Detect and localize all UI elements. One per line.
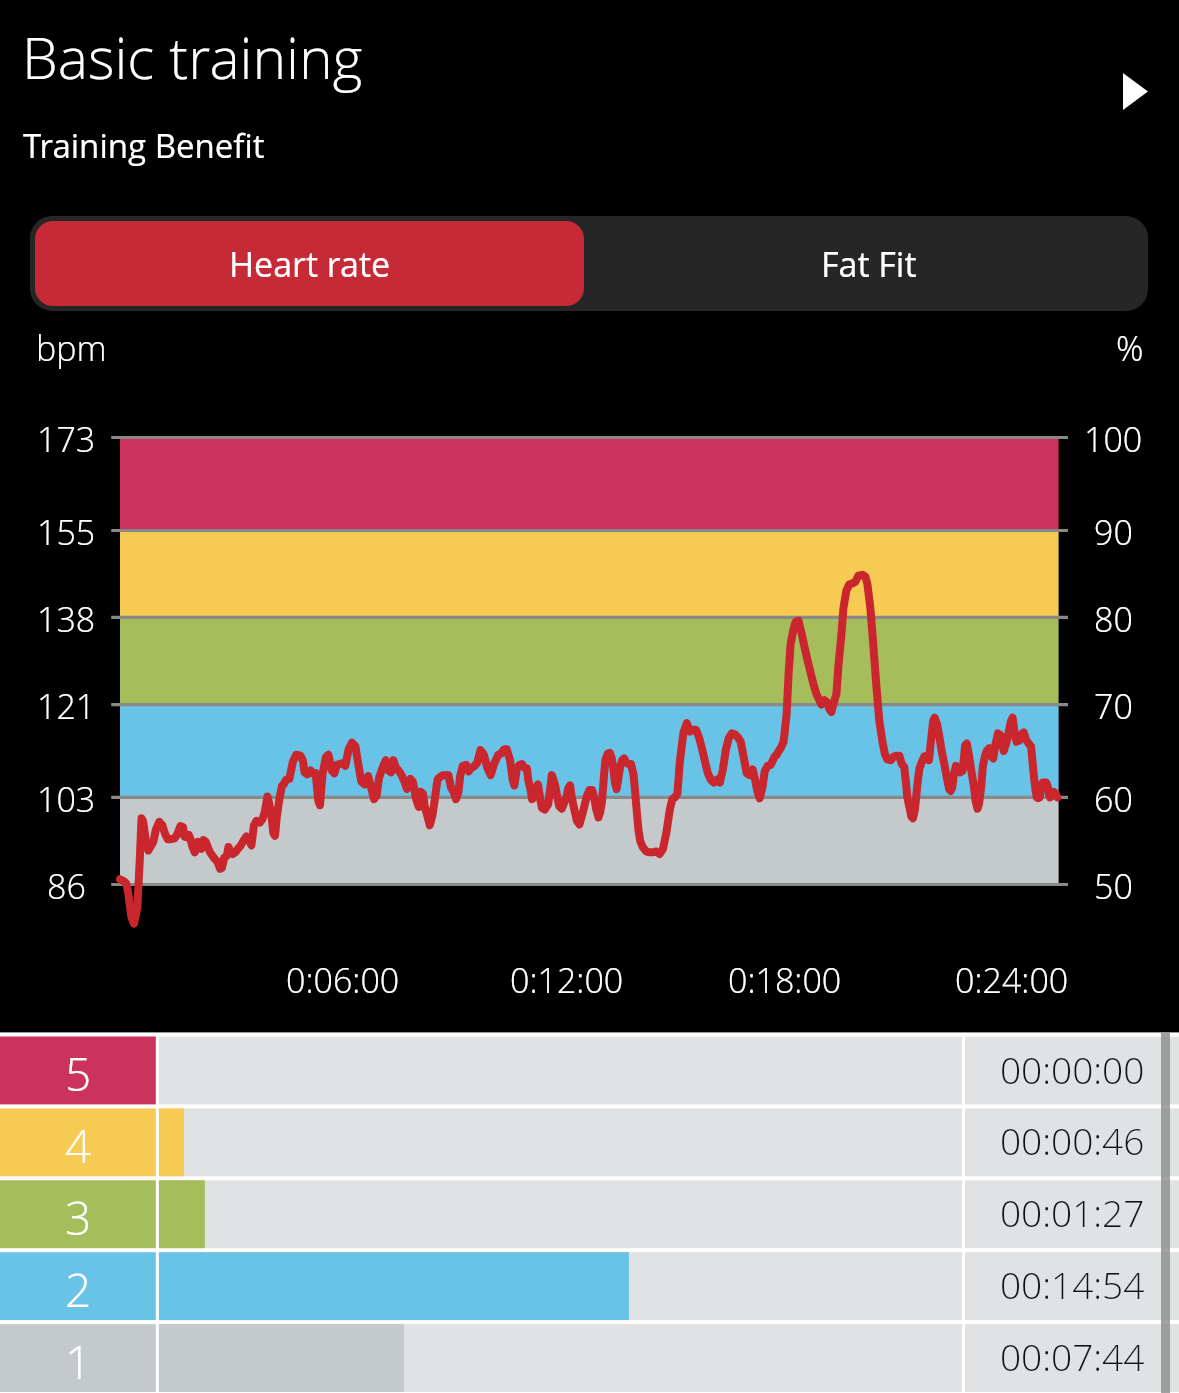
staticText: 121 — [37, 683, 96, 729]
staticText: 70 — [1094, 683, 1133, 729]
staticText: 5 — [65, 1042, 92, 1105]
staticText: 90 — [1094, 509, 1133, 555]
staticText: 3 — [65, 1186, 92, 1249]
staticText: 103 — [37, 776, 96, 822]
staticText: Basic training — [22, 18, 363, 96]
staticText: bpm — [36, 325, 107, 371]
staticText: 0:06:00 — [286, 957, 400, 1003]
staticText: 00:00:00 — [1000, 1044, 1145, 1094]
staticText: 00:07:44 — [1000, 1331, 1145, 1381]
staticText: % — [1116, 325, 1144, 371]
button[interactable]: Fat Fit — [589, 216, 1148, 311]
button[interactable] — [0, 1252, 1179, 1320]
staticText: 00:00:46 — [1000, 1115, 1145, 1165]
staticText: 0:18:00 — [728, 957, 842, 1003]
staticText: 80 — [1094, 596, 1133, 642]
staticText: 138 — [37, 596, 96, 642]
staticText: 50 — [1094, 863, 1133, 909]
staticText: 0:12:00 — [510, 957, 624, 1003]
staticText: 2 — [65, 1258, 92, 1321]
button[interactable] — [0, 1324, 1179, 1392]
button[interactable]: Heart rate — [30, 216, 589, 311]
staticText: 4 — [65, 1114, 92, 1177]
staticText: Heart rate — [229, 241, 390, 287]
staticText: 00:14:54 — [1000, 1259, 1145, 1309]
staticText: Training Benefit — [23, 123, 265, 168]
staticText: 0:24:00 — [955, 957, 1069, 1003]
button[interactable] — [0, 1108, 1179, 1176]
button[interactable] — [0, 1037, 1179, 1105]
staticText: 173 — [37, 416, 96, 462]
staticText: 1 — [65, 1330, 92, 1393]
button[interactable] — [0, 1180, 1179, 1248]
staticText: Fat Fit — [821, 241, 917, 287]
button[interactable]: Play — [1100, 56, 1170, 126]
staticText: 00:01:27 — [1000, 1187, 1145, 1237]
staticText: 86 — [47, 863, 86, 909]
staticText: 60 — [1094, 776, 1133, 822]
staticText: 100 — [1084, 416, 1143, 462]
staticText: 155 — [37, 509, 96, 555]
